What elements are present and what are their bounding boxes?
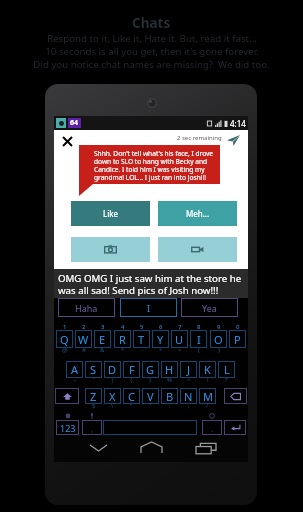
staticText: $: [92, 402, 96, 410]
staticText: +: [159, 346, 163, 354]
button[interactable]: Recents: [194, 439, 218, 457]
button[interactable]: D: [104, 361, 121, 378]
button[interactable]: Send: [227, 135, 240, 146]
staticText: N: [184, 389, 193, 404]
staticText: ~: [73, 376, 77, 384]
staticText: 1: [63, 323, 67, 330]
button[interactable]: I: [190, 330, 207, 348]
button[interactable]: L: [218, 361, 235, 378]
staticText: 2 sec remaining: [177, 134, 222, 142]
button[interactable]: Close: [63, 137, 72, 146]
button[interactable]: E: [94, 330, 111, 348]
staticText: Like: [103, 208, 119, 219]
button[interactable]: M: [199, 388, 216, 404]
button[interactable]: K: [199, 361, 216, 378]
button[interactable]: Z: [85, 388, 102, 404]
button[interactable]: [103, 420, 197, 435]
staticText: 3: [101, 323, 105, 330]
staticText: 0: [236, 323, 240, 330]
button[interactable]: R: [114, 330, 131, 348]
staticText: 4:14: [230, 118, 246, 129]
button[interactable]: C: [123, 388, 140, 404]
staticText: T: [138, 332, 145, 347]
button[interactable]: G: [142, 361, 159, 378]
staticText: D: [108, 362, 117, 377]
staticText: G: [146, 362, 155, 377]
button[interactable]: X: [104, 388, 121, 404]
button[interactable]: Home: [139, 438, 163, 456]
button[interactable]: 123: [56, 420, 79, 435]
staticText: 64: [70, 118, 79, 128]
staticText: 5: [140, 323, 144, 330]
staticText: 7: [178, 323, 182, 330]
staticText: M: [203, 389, 213, 404]
staticText: #: [82, 346, 86, 354]
button[interactable]: I: [120, 298, 177, 317]
staticText: ): [218, 346, 220, 354]
staticText: Q: [60, 332, 69, 347]
button[interactable]: Meh...: [158, 201, 237, 226]
staticText: W: [78, 332, 89, 347]
button[interactable]: .: [202, 420, 222, 435]
button[interactable]: Shift: [55, 388, 79, 404]
button[interactable]: ,: [82, 420, 102, 435]
staticText: ^: [187, 376, 191, 384]
button[interactable]: F: [123, 361, 140, 378]
staticText: Chats: [132, 14, 171, 32]
staticText: X: [109, 389, 116, 404]
staticText: 123: [60, 422, 76, 434]
button[interactable]: N: [180, 388, 197, 404]
staticText: 6: [159, 323, 163, 330]
button[interactable]: W: [75, 330, 92, 348]
staticText: E: [99, 332, 106, 347]
staticText: 9: [217, 323, 221, 330]
button[interactable]: O: [210, 330, 227, 348]
staticText: }: [149, 376, 152, 384]
staticText: :: [169, 402, 171, 410]
button[interactable]: Q: [56, 330, 73, 348]
staticText: Z: [90, 389, 97, 404]
button[interactable]: B: [161, 388, 178, 404]
staticText: S: [90, 362, 97, 377]
button[interactable]: Camera: [71, 237, 150, 262]
staticText: -: [141, 346, 143, 354]
button[interactable]: Yea: [181, 298, 238, 317]
staticText: B: [166, 389, 174, 404]
staticText: |: [111, 376, 115, 384]
button[interactable]: Back: [86, 439, 110, 457]
staticText: !: [207, 376, 209, 384]
button[interactable]: H: [161, 361, 178, 378]
button[interactable]: A: [66, 361, 83, 378]
button[interactable]: V: [142, 388, 159, 404]
staticText: C: [128, 389, 135, 404]
staticText: ?: [225, 376, 228, 384]
staticText: P: [234, 332, 241, 347]
button[interactable]: Y: [152, 330, 169, 348]
staticText: Meh...: [186, 208, 210, 219]
staticText: ,: [91, 422, 94, 434]
staticText: 8: [197, 323, 201, 330]
staticText: 10 seconds is all you get, then it's gon…: [45, 45, 259, 58]
button[interactable]: Backspace: [224, 388, 247, 404]
button[interactable]: Haha: [58, 298, 115, 317]
staticText: 4: [121, 323, 125, 330]
staticText: /: [206, 402, 209, 410]
button[interactable]: S: [85, 361, 102, 378]
button[interactable]: J: [180, 361, 197, 378]
button[interactable]: Enter: [224, 420, 246, 435]
staticText: ": [130, 402, 133, 410]
button[interactable]: T: [133, 330, 150, 348]
button[interactable]: P: [229, 330, 246, 348]
staticText: Did you notice chat names are missing? W…: [33, 58, 270, 71]
staticText: Shhh. Don't tell what's his face, I drov…: [94, 149, 217, 182]
staticText: J: [187, 362, 191, 377]
staticText: `: [93, 376, 95, 384]
staticText: K: [204, 362, 211, 377]
staticText: *: [121, 346, 125, 354]
staticText: %: [167, 376, 172, 384]
button[interactable]: Video: [158, 237, 237, 262]
button[interactable]: Like: [71, 201, 150, 226]
button[interactable]: U: [171, 330, 188, 348]
staticText: I: [197, 332, 201, 347]
staticText: \: [111, 402, 114, 410]
